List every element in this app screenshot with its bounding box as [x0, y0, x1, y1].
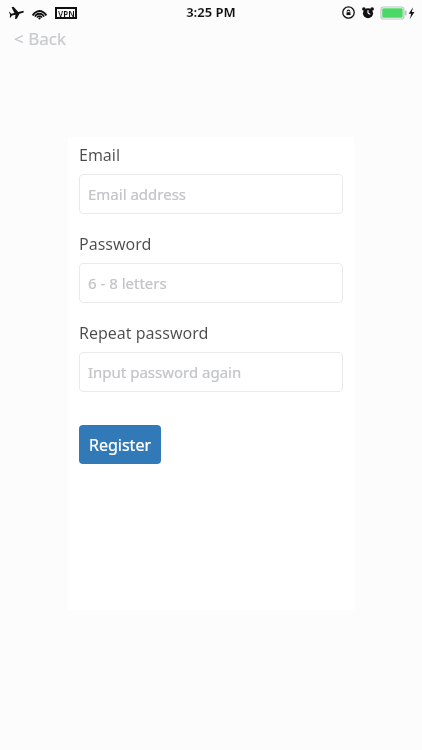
staticText: VPN [58, 8, 75, 19]
staticText: Repeat password [79, 322, 209, 344]
button[interactable]: Register [79, 425, 161, 464]
button[interactable]: Email address [79, 174, 343, 214]
button[interactable]: 6 - 8 letters [79, 263, 343, 303]
staticText: Register [89, 434, 152, 456]
staticText: Input password again [88, 362, 242, 382]
staticText: Email address [88, 184, 187, 204]
button[interactable]: Input password again [79, 352, 343, 392]
staticText: 6 - 8 letters [88, 273, 167, 293]
staticText: Password [79, 233, 152, 255]
staticText: < Back [14, 27, 66, 50]
staticText: Email [79, 144, 121, 166]
staticText: 3:25 PM [186, 3, 236, 21]
button[interactable]: < Back [8, 24, 72, 53]
